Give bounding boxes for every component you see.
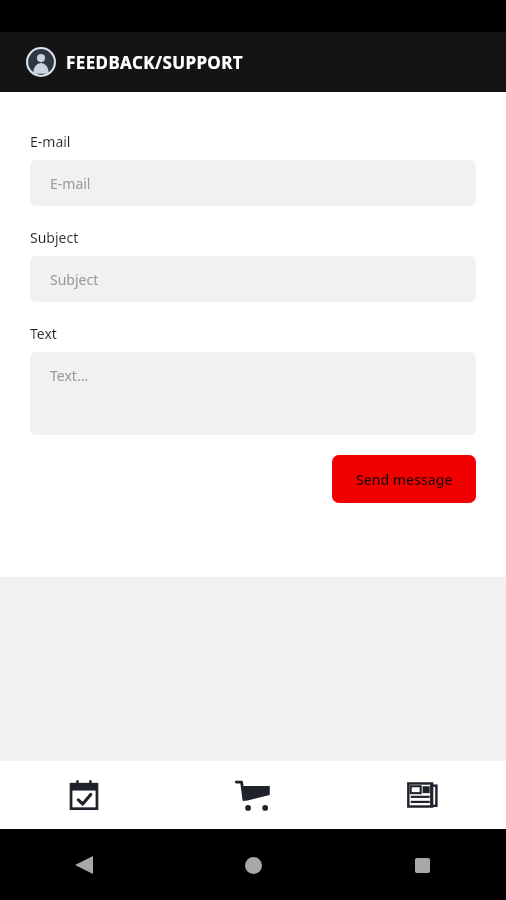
staticText: Send message: [356, 470, 453, 489]
button[interactable]: Text...: [30, 352, 476, 435]
button[interactable]: Subject: [30, 256, 476, 302]
button[interactable]: News: [337, 761, 506, 829]
button[interactable]: Cart: [168, 761, 337, 829]
staticText: E-mail: [30, 132, 71, 151]
staticText: E-mail: [50, 174, 91, 193]
staticText: FEEDBACK/SUPPORT: [66, 51, 243, 74]
staticText: Subject: [50, 270, 99, 289]
button[interactable]: Home: [230, 842, 276, 888]
staticText: Text: [30, 324, 57, 343]
staticText: Text...: [50, 366, 89, 385]
button[interactable]: Send message: [332, 455, 476, 503]
button[interactable]: Calendar: [0, 761, 168, 829]
button[interactable]: Back: [61, 842, 107, 888]
staticText: Subject: [30, 228, 79, 247]
button[interactable]: FEEDBACK/SUPPORT: [0, 32, 506, 92]
button[interactable]: E-mail: [30, 160, 476, 206]
button[interactable]: Recents: [399, 842, 445, 888]
